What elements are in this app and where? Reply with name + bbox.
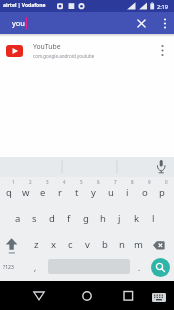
staticText: 1	[12, 179, 15, 185]
staticText: n	[119, 238, 125, 251]
staticText: f	[67, 212, 71, 225]
staticText: 3	[46, 179, 49, 185]
button[interactable]: s	[26, 203, 43, 229]
button[interactable]: 9	[136, 177, 153, 203]
button[interactable]: j	[111, 203, 128, 229]
staticText: 7	[114, 179, 117, 185]
button[interactable]: 3	[34, 177, 51, 203]
button[interactable]	[150, 157, 174, 177]
staticText: b	[102, 238, 108, 251]
button[interactable]	[0, 229, 28, 255]
staticText: ?123	[3, 264, 14, 271]
staticText: e	[40, 186, 46, 199]
staticText: .	[138, 262, 141, 273]
button[interactable]: b	[96, 229, 113, 255]
button[interactable]: k	[128, 203, 145, 229]
button[interactable]: d	[43, 203, 60, 229]
button[interactable]: 4	[51, 177, 68, 203]
staticText: r	[58, 186, 62, 199]
staticText: q	[6, 186, 12, 199]
button[interactable]: 2	[17, 177, 34, 203]
button[interactable]: z	[28, 229, 45, 255]
staticText: c	[68, 238, 73, 251]
button[interactable]: 6	[85, 177, 102, 203]
staticText: 0	[165, 179, 168, 185]
staticText: g	[83, 212, 89, 225]
staticText: 6	[97, 179, 100, 185]
button[interactable]: ?123	[0, 255, 22, 281]
button[interactable]: c	[62, 229, 79, 255]
staticText: k	[134, 212, 140, 225]
staticText: l	[152, 212, 155, 225]
button[interactable]: m	[130, 229, 147, 255]
staticText: u	[108, 186, 114, 199]
button[interactable]	[147, 229, 171, 255]
staticText: 8	[131, 179, 134, 185]
staticText: w	[22, 186, 30, 199]
staticText: j	[118, 212, 121, 225]
staticText: z	[34, 238, 39, 251]
staticText: s	[32, 212, 37, 225]
button[interactable]	[149, 291, 170, 305]
button[interactable]: l	[145, 203, 162, 229]
staticText: m	[134, 238, 143, 251]
staticText: com.google.android.youtube	[33, 53, 95, 59]
button[interactable]	[151, 258, 170, 277]
button[interactable]: v	[79, 229, 96, 255]
button[interactable]	[134, 16, 149, 31]
staticText: h	[100, 212, 106, 225]
button[interactable]	[26, 282, 52, 307]
button[interactable]: 8	[119, 177, 136, 203]
button[interactable]	[74, 282, 100, 307]
button[interactable]: 0	[153, 177, 170, 203]
staticText: x	[51, 238, 57, 251]
button[interactable]	[158, 16, 172, 31]
staticText: o	[142, 186, 148, 199]
staticText: you	[12, 18, 25, 28]
staticText: 2	[29, 179, 32, 185]
staticText: v	[85, 238, 90, 251]
button[interactable]: 5	[68, 177, 85, 203]
button[interactable]: YouTube	[0, 34, 174, 66]
button[interactable]: a	[9, 203, 26, 229]
button[interactable]: 1	[0, 177, 17, 203]
button[interactable]: 7	[102, 177, 119, 203]
staticText: 2:19	[157, 3, 168, 10]
staticText: t	[75, 186, 79, 199]
button[interactable]: f	[60, 203, 77, 229]
staticText: y	[91, 186, 96, 199]
staticText: airtel | Vodafone	[3, 2, 46, 9]
staticText: d	[49, 212, 55, 225]
staticText: ,	[34, 262, 37, 273]
button[interactable]: x	[45, 229, 62, 255]
staticText: i	[126, 186, 129, 199]
staticText: YouTube	[33, 42, 61, 51]
staticText: 5	[80, 179, 83, 185]
staticText: 4	[63, 179, 66, 185]
button[interactable]: g	[77, 203, 94, 229]
button[interactable]	[115, 282, 141, 307]
button[interactable]: n	[113, 229, 130, 255]
staticText: a	[15, 212, 21, 225]
staticText: p	[159, 186, 165, 199]
staticText: 9	[148, 179, 151, 185]
button[interactable]	[155, 42, 170, 60]
button[interactable]: ,	[22, 255, 47, 281]
button[interactable]: .	[131, 255, 148, 281]
button[interactable]: h	[94, 203, 111, 229]
